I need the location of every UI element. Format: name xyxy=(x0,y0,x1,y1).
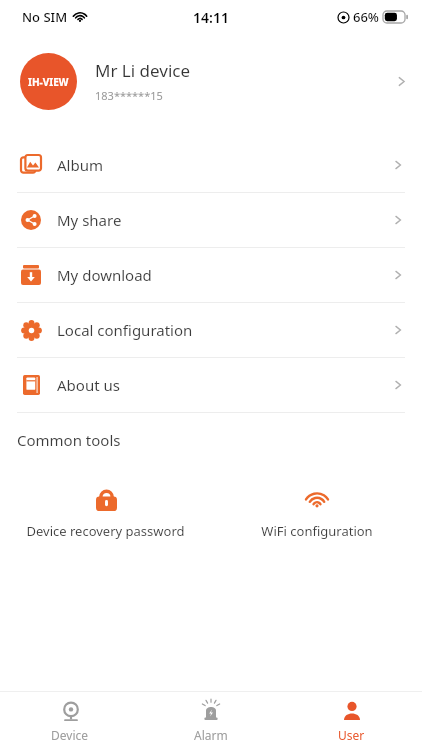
button[interactable]: Album xyxy=(0,138,422,192)
staticText: 66% xyxy=(353,8,379,26)
staticText: IH-VIEW xyxy=(28,75,69,89)
staticText: WiFi configuration xyxy=(261,522,373,540)
button[interactable]: User xyxy=(281,692,422,750)
button[interactable]: Local configuration xyxy=(0,303,422,357)
button[interactable]: My share xyxy=(0,193,422,247)
staticText: Local configuration xyxy=(57,320,392,340)
staticText: Album xyxy=(57,155,392,175)
staticText: Common tools xyxy=(17,430,121,450)
staticText: 14:11 xyxy=(193,8,229,27)
staticText: Mr Li device xyxy=(95,59,191,82)
button[interactable]: My download xyxy=(0,248,422,302)
staticText: Device recovery password xyxy=(26,522,185,540)
staticText: My download xyxy=(57,265,392,285)
staticText: No SIM xyxy=(22,8,68,26)
button[interactable]: WiFi configuration xyxy=(211,482,422,544)
staticText: Device xyxy=(51,727,89,743)
staticText: My share xyxy=(57,210,392,230)
staticText: Alarm xyxy=(194,727,228,743)
staticText: User xyxy=(338,727,365,743)
button[interactable]: Device recovery password xyxy=(0,482,211,544)
button[interactable]: About us xyxy=(0,358,422,412)
staticText: About us xyxy=(57,375,392,395)
button[interactable]: IH-VIEW xyxy=(0,34,422,128)
button[interactable]: Alarm xyxy=(140,692,281,750)
button[interactable]: Device xyxy=(0,692,140,750)
staticText: 183******15 xyxy=(95,88,163,103)
